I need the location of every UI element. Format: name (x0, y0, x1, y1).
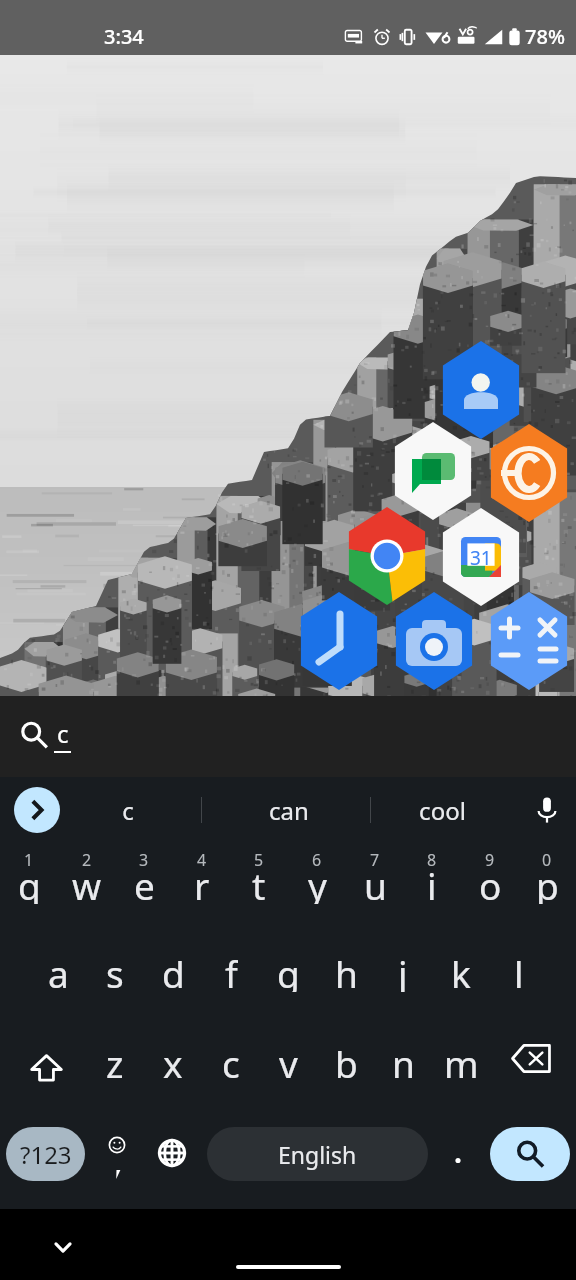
button[interactable]: h (317, 948, 375, 992)
button[interactable]: d (144, 948, 202, 992)
staticText: c (122, 794, 134, 827)
button[interactable]: p (518, 860, 576, 904)
button[interactable]: c (80, 783, 176, 837)
button[interactable]: x (144, 1038, 202, 1082)
staticText: i (427, 860, 437, 904)
button[interactable]: k (432, 948, 490, 992)
staticText: 78% (525, 23, 565, 50)
button[interactable]: Backspace (495, 1023, 567, 1093)
button[interactable]: l (490, 948, 548, 992)
staticText: l (514, 948, 524, 992)
button[interactable]: can (241, 783, 337, 837)
button[interactable]: c (0, 696, 576, 777)
button[interactable]: j (374, 948, 432, 992)
staticText: 8 (427, 849, 437, 869)
button[interactable]: v (259, 1038, 317, 1082)
button[interactable]: e (115, 860, 173, 904)
button[interactable]: s (86, 948, 144, 992)
staticText: f (225, 948, 238, 992)
button[interactable]: Shift (10, 1032, 82, 1102)
button[interactable]: b (317, 1038, 375, 1082)
button[interactable]: Change language (146, 1123, 198, 1183)
button[interactable]: cool (394, 783, 490, 837)
staticText: 2 (82, 849, 92, 869)
button[interactable]: c (202, 1038, 260, 1082)
button[interactable]: Period (434, 1127, 484, 1181)
button[interactable]: Emoji and comma (91, 1121, 143, 1185)
button[interactable]: z (86, 1038, 144, 1082)
staticText: x (163, 1038, 183, 1082)
staticText: m (444, 1038, 479, 1082)
staticText: e (134, 860, 155, 904)
staticText: r (194, 860, 210, 904)
button[interactable]: t (230, 860, 288, 904)
staticText: k (451, 948, 471, 992)
button[interactable]: g (259, 948, 317, 992)
staticText: c (222, 1038, 240, 1082)
button[interactable]: English (207, 1127, 428, 1181)
staticText: cool (419, 794, 466, 827)
staticText: 5 (254, 849, 264, 869)
button[interactable]: Hide keyboard (43, 1227, 83, 1267)
staticText: o (479, 860, 502, 904)
staticText: b (335, 1038, 358, 1082)
staticText: c (57, 717, 69, 750)
staticText: z (106, 1038, 124, 1082)
button[interactable]: n (374, 1038, 432, 1082)
staticText: 9 (485, 849, 495, 869)
button[interactable]: ?123 (6, 1127, 85, 1181)
button[interactable]: a (29, 948, 87, 992)
staticText: g (277, 948, 300, 992)
staticText: q (18, 860, 41, 904)
staticText: 7 (370, 849, 380, 869)
button[interactable]: y (288, 860, 346, 904)
button[interactable]: f (202, 948, 260, 992)
staticText: n (392, 1038, 415, 1082)
staticText: y (308, 860, 327, 904)
button[interactable]: o (461, 860, 519, 904)
staticText: ?123 (20, 1138, 72, 1171)
button[interactable]: q (0, 860, 58, 904)
button[interactable]: w (58, 860, 116, 904)
staticText: 6 (312, 849, 322, 869)
button[interactable]: r (173, 860, 231, 904)
button[interactable]: Voice input (524, 787, 570, 833)
staticText: 0 (542, 849, 552, 869)
staticText: 3:34 (104, 23, 144, 50)
staticText: t (252, 860, 266, 904)
staticText: s (106, 948, 124, 992)
button[interactable]: m (432, 1038, 490, 1082)
staticText: can (269, 794, 309, 827)
staticText: v (279, 1038, 298, 1082)
staticText: English (278, 1139, 357, 1170)
staticText: 1 (24, 849, 34, 869)
staticText: 4 (197, 849, 207, 869)
staticText: 3 (139, 849, 149, 869)
staticText: h (335, 948, 358, 992)
staticText: a (48, 948, 69, 992)
staticText: 31 (470, 545, 492, 571)
staticText: u (364, 860, 387, 904)
staticText: p (536, 860, 559, 904)
staticText: d (162, 948, 185, 992)
button[interactable]: i (403, 860, 461, 904)
button[interactable]: More suggestions (14, 787, 60, 833)
button[interactable]: Search (490, 1127, 570, 1181)
staticText: j (398, 948, 408, 992)
staticText: w (72, 860, 102, 904)
button[interactable]: u (346, 860, 404, 904)
